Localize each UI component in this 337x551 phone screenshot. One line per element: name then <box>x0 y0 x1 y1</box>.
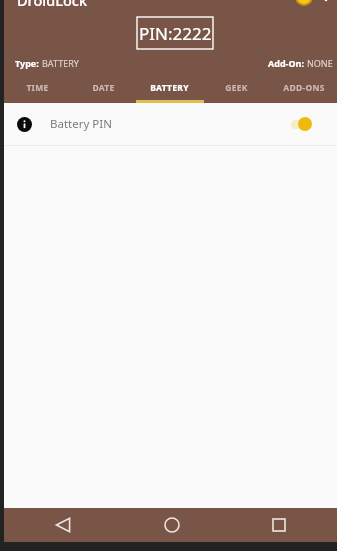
staticText: GEEK <box>225 82 248 94</box>
button[interactable]: Back <box>43 508 83 542</box>
staticText: NONE <box>307 57 333 69</box>
button[interactable]: Battery PIN switch <box>291 114 312 134</box>
staticText: Type: <box>15 57 42 69</box>
button[interactable]: DATE <box>70 81 136 103</box>
button[interactable]: Lock toggle <box>295 0 313 6</box>
button[interactable]: Recents <box>259 508 299 542</box>
staticText: ADD-ONS <box>283 82 325 94</box>
staticText: Add-On: <box>268 57 307 69</box>
button[interactable]: Home <box>152 508 192 542</box>
staticText: DroidLock <box>17 0 88 10</box>
staticText: Battery PIN <box>50 116 112 132</box>
button[interactable]: Battery PIN <box>4 103 337 145</box>
staticText: TIME <box>26 82 49 94</box>
button[interactable]: BATTERY <box>136 81 203 103</box>
staticText: BATTERY <box>42 57 79 69</box>
button[interactable]: TIME <box>4 81 70 103</box>
button[interactable]: GEEK <box>203 81 270 103</box>
button[interactable]: More options <box>318 0 334 3</box>
staticText: DATE <box>92 82 115 94</box>
button[interactable]: ADD-ONS <box>270 81 337 103</box>
staticText: PIN:2222 <box>139 22 212 45</box>
staticText: BATTERY <box>150 82 189 94</box>
